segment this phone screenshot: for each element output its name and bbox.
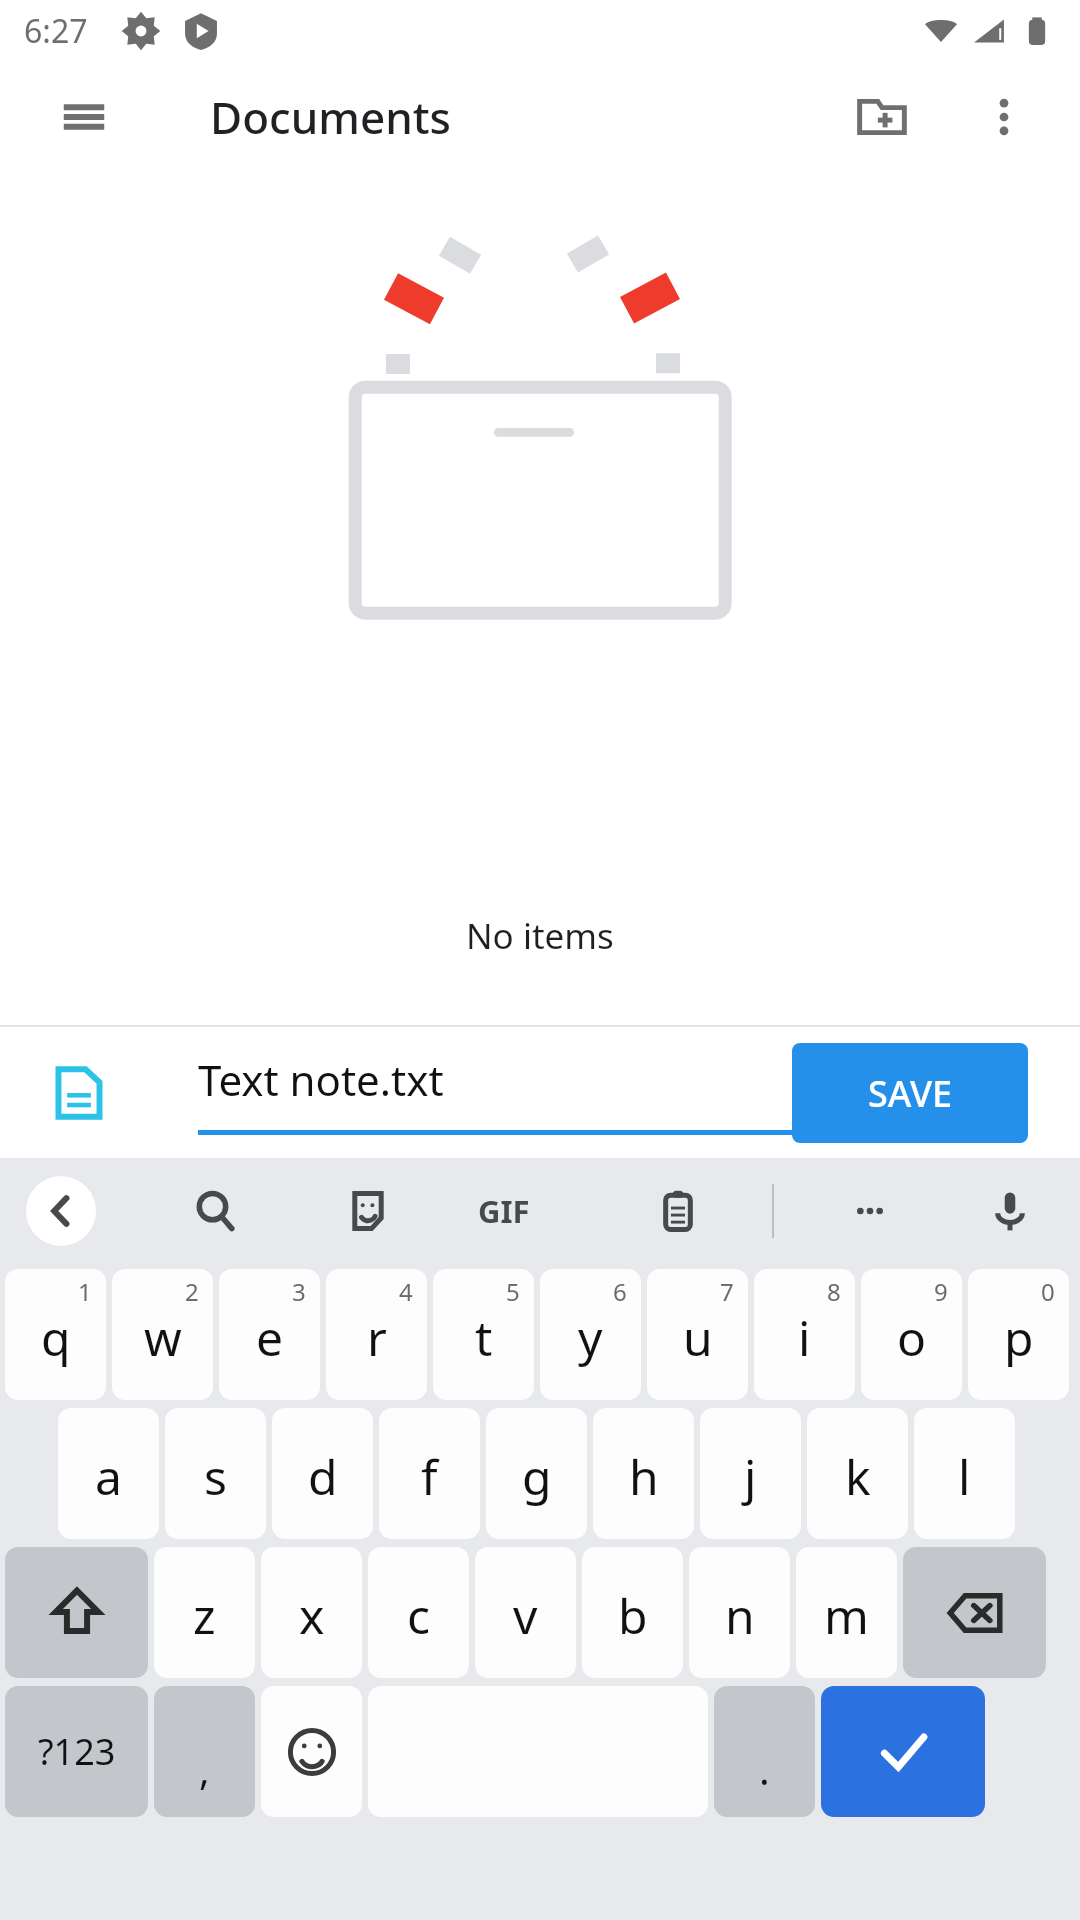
staticText: g [522,1444,552,1509]
button[interactable]: i [754,1269,855,1400]
staticText: d [308,1444,338,1509]
staticText: h [629,1444,659,1509]
staticText: y [578,1305,603,1370]
staticText: j [744,1444,757,1509]
button[interactable]: GIF [464,1171,544,1251]
staticText: Documents [210,87,451,147]
staticText: n [725,1583,755,1648]
staticText: 9 [934,1275,948,1308]
button[interactable]: SAVE [792,1043,1028,1143]
staticText: 6 [613,1275,627,1308]
staticText: 8 [827,1275,841,1308]
staticText: a [95,1444,122,1509]
staticText: , [199,1742,210,1796]
button[interactable]: l [914,1408,1015,1539]
button[interactable]: More [830,1171,910,1251]
button[interactable]: z [154,1547,255,1678]
button[interactable]: . [714,1686,815,1817]
button[interactable]: w [112,1269,213,1400]
staticText: 6:27 [24,9,88,53]
button[interactable]: ?123 [5,1686,148,1817]
button[interactable]: Stickers [328,1171,408,1251]
button[interactable]: Text note.txt [198,1051,792,1135]
staticText: 0 [1041,1275,1055,1308]
button[interactable]: q [5,1269,106,1400]
button[interactable]: a [58,1408,159,1539]
button[interactable]: r [326,1269,427,1400]
button[interactable]: f [379,1408,480,1539]
button[interactable]: b [582,1547,683,1678]
staticText: f [421,1444,438,1509]
staticText: u [683,1305,713,1370]
button[interactable]: s [165,1408,266,1539]
button[interactable]: m [796,1547,897,1678]
button[interactable]: y [540,1269,641,1400]
button[interactable]: d [272,1408,373,1539]
button[interactable]: More options [956,69,1052,165]
staticText: 7 [720,1275,734,1308]
button[interactable]: Clipboard [638,1171,718,1251]
staticText: o [897,1305,927,1370]
staticText: ?123 [38,1727,116,1776]
button[interactable]: Search [176,1171,256,1251]
staticText: 5 [506,1275,520,1308]
staticText: b [618,1583,648,1648]
staticText: . [759,1742,770,1796]
staticText: No items [466,912,614,960]
staticText: t [475,1305,493,1370]
button[interactable]: e [219,1269,320,1400]
button[interactable]: h [593,1408,694,1539]
button[interactable]: Create folder [834,69,930,165]
button[interactable]: x [261,1547,362,1678]
button[interactable]: p [968,1269,1069,1400]
button[interactable]: Emoji [261,1686,362,1817]
staticText: 4 [399,1275,413,1308]
staticText: c [407,1583,431,1648]
button[interactable]: j [700,1408,801,1539]
staticText: m [824,1583,869,1648]
button[interactable]: Backspace [903,1547,1046,1678]
staticText: GIF [478,1190,530,1232]
staticText: x [299,1583,325,1648]
button[interactable]: , [154,1686,255,1817]
button[interactable]: t [433,1269,534,1400]
staticText: s [204,1444,227,1509]
staticText: Text note.txt [198,1051,444,1108]
button[interactable]: u [647,1269,748,1400]
button[interactable]: o [861,1269,962,1400]
button[interactable]: Close suggestions [26,1176,96,1246]
staticText: e [256,1305,284,1370]
button[interactable]: v [475,1547,576,1678]
button[interactable]: Done [821,1686,985,1817]
staticText: SAVE [868,1069,953,1118]
button[interactable]: n [689,1547,790,1678]
staticText: 3 [292,1275,306,1308]
staticText: k [845,1444,871,1509]
staticText: z [193,1583,216,1648]
button[interactable]: g [486,1408,587,1539]
staticText: 2 [185,1275,199,1308]
staticText: l [958,1444,971,1509]
button[interactable]: Voice input [970,1171,1050,1251]
staticText: 1 [78,1275,92,1308]
button[interactable]: Navigation menu [48,81,120,153]
staticText: v [513,1583,538,1648]
staticText: r [367,1305,387,1370]
button[interactable]: k [807,1408,908,1539]
staticText: i [798,1305,811,1370]
staticText: w [144,1305,182,1370]
button[interactable]: c [368,1547,469,1678]
staticText: p [1004,1305,1034,1370]
button[interactable]: Shift [5,1547,148,1678]
staticText: q [41,1305,71,1370]
